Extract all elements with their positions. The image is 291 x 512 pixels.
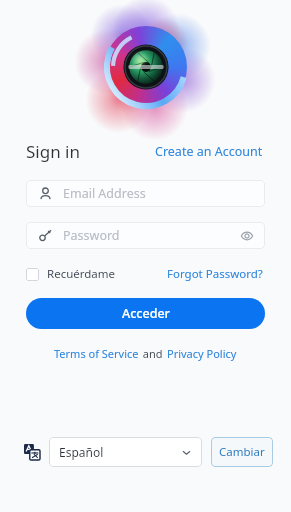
staticText: Password	[63, 227, 120, 244]
button[interactable]: Create an Account	[153, 139, 265, 164]
button[interactable]: Cambiar	[211, 437, 273, 467]
staticText: Recuérdame	[47, 266, 116, 282]
button[interactable]: Terms of Service	[53, 343, 140, 364]
staticText: Terms of Service	[54, 346, 139, 361]
staticText: Acceder	[122, 305, 170, 322]
button[interactable]: Acceder	[26, 298, 265, 329]
button[interactable]: Español	[49, 437, 202, 467]
button[interactable]: Password	[26, 222, 265, 249]
button[interactable]: Recuérdame	[26, 264, 116, 284]
button[interactable]: Privacy Policy	[166, 343, 238, 364]
button[interactable]: Translate	[22, 442, 42, 462]
button[interactable]: Show password	[237, 226, 256, 245]
button[interactable]: Email Address	[26, 180, 265, 207]
staticText: Cambiar	[219, 444, 265, 460]
staticText: Email Address	[63, 185, 146, 202]
button[interactable]: Forgot Password?	[165, 263, 265, 285]
staticText: Español	[59, 444, 104, 460]
staticText: Forgot Password?	[167, 266, 263, 282]
staticText: Create an Account	[155, 143, 263, 160]
staticText: Privacy Policy	[167, 346, 237, 361]
staticText: and	[140, 346, 166, 361]
staticText: Sign in	[26, 140, 80, 163]
